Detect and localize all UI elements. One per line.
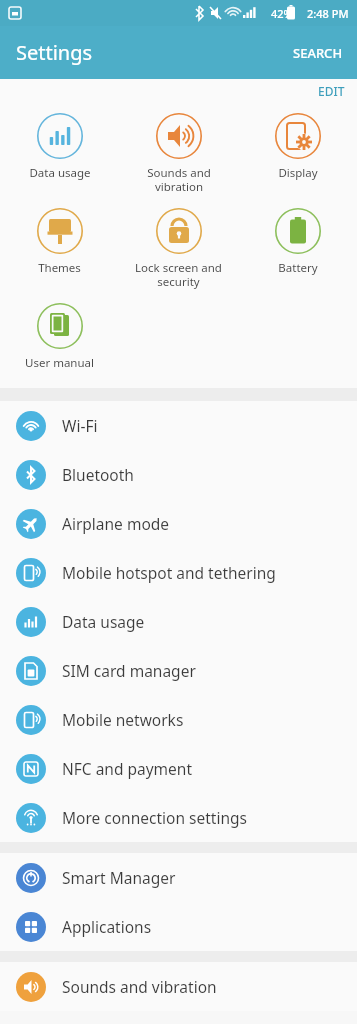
staticText: User manual [25, 355, 94, 371]
staticText: Sounds and vibration [62, 976, 217, 997]
button[interactable]: NFC and payment [0, 744, 357, 793]
staticText: EDIT [318, 83, 345, 99]
staticText: Bluetooth [62, 464, 134, 485]
button[interactable]: Mobile networks [0, 695, 357, 744]
button[interactable]: Bluetooth [0, 450, 357, 499]
button[interactable]: Data usage [0, 106, 119, 188]
button[interactable]: Data usage [0, 597, 357, 646]
staticText: Data usage [29, 165, 91, 181]
button[interactable]: Display [238, 106, 357, 188]
staticText: NFC and payment [62, 758, 193, 779]
staticText: Smart Manager [62, 867, 176, 888]
staticText: SEARCH [293, 44, 343, 62]
staticText: Wi-Fi [62, 415, 98, 436]
staticText: Settings [16, 39, 93, 66]
staticText: Battery [278, 260, 318, 276]
button[interactable]: Themes [0, 201, 119, 283]
staticText: Data usage [62, 611, 145, 632]
button[interactable]: Mobile hotspot and tethering [0, 548, 357, 597]
button[interactable]: Battery [238, 201, 357, 283]
button[interactable]: User manual [0, 296, 119, 378]
button[interactable]: Wi-Fi [0, 401, 357, 450]
staticText: Sounds and vibration [147, 165, 211, 194]
button[interactable]: EDIT [306, 80, 357, 102]
staticText: Airplane mode [62, 513, 170, 534]
staticText: SIM card manager [62, 660, 196, 681]
staticText: Mobile hotspot and tethering [62, 562, 276, 583]
button[interactable]: Lock screen and security [119, 201, 238, 296]
staticText: Themes [38, 260, 81, 276]
button[interactable]: SIM card manager [0, 646, 357, 695]
button[interactable]: Sounds and vibration [0, 962, 357, 1011]
button[interactable]: Sounds and vibration [119, 106, 238, 201]
staticText: Display [278, 165, 318, 181]
staticText: 42% [271, 6, 293, 21]
button[interactable]: Airplane mode [0, 499, 357, 548]
button[interactable]: SEARCH [279, 34, 357, 72]
staticText: Lock screen and security [135, 260, 222, 289]
button[interactable]: Applications [0, 902, 357, 951]
staticText: Applications [62, 916, 152, 937]
button[interactable]: Smart Manager [0, 853, 357, 902]
staticText: Mobile networks [62, 709, 184, 730]
staticText: More connection settings [62, 807, 247, 828]
button[interactable]: More connection settings [0, 793, 357, 842]
staticText: 2:48 PM [307, 6, 349, 21]
